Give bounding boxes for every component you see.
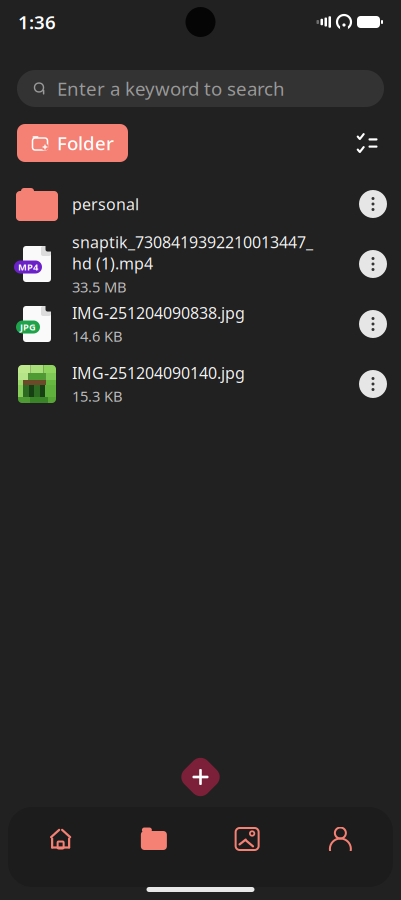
button[interactable]: Home (14, 815, 107, 863)
button[interactable]: personal (0, 174, 401, 234)
button[interactable]: IMG-251204090140.jpg (0, 354, 401, 414)
button[interactable]: Add (172, 749, 228, 805)
button[interactable]: Enter a keyword to search (17, 70, 384, 107)
button[interactable]: Profile (294, 815, 387, 863)
staticText: personal (72, 193, 139, 215)
button[interactable]: MP4 (0, 234, 401, 294)
staticText: IMG-251204090838.jpg (72, 302, 245, 323)
button[interactable]: More options (359, 190, 387, 218)
staticText: IMG-251204090140.jpg (72, 362, 245, 383)
staticText: JPG (20, 321, 36, 333)
staticText: MP4 (18, 261, 38, 273)
button[interactable]: More options (359, 370, 387, 398)
button[interactable]: Photos (200, 815, 294, 863)
staticText: 1:36 (18, 10, 56, 34)
button[interactable]: Folder (17, 124, 128, 162)
staticText: 15.3 KB (72, 386, 123, 406)
button[interactable]: More options (359, 250, 387, 278)
button[interactable]: More options (359, 310, 387, 338)
staticText: Enter a keyword to search (57, 76, 285, 101)
button[interactable]: JPG (0, 294, 401, 354)
staticText: 33.5 MB (72, 277, 127, 296)
staticText: 14.6 KB (72, 326, 123, 346)
button[interactable]: Select items (350, 126, 384, 160)
staticText: snaptik_7308419392210013447_hd (1).mp4 (72, 231, 313, 274)
staticText: Folder (57, 131, 114, 155)
button[interactable]: Files (107, 815, 200, 863)
